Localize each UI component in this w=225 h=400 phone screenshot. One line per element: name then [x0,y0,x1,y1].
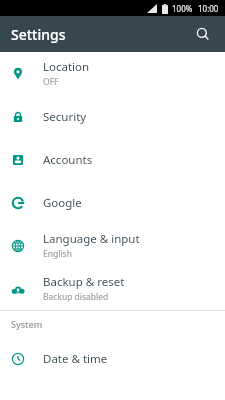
staticText: 100% [172,3,193,14]
staticText: English [43,248,72,260]
staticText: 10:00 [198,3,219,14]
staticText: OFF [43,76,59,88]
staticText: Date & time [43,351,108,367]
staticText: Settings [11,25,66,44]
staticText: Backup disabled [43,291,109,303]
button[interactable]: Accounts [0,138,225,181]
button[interactable]: Date & time [0,337,225,380]
staticText: Location [43,59,90,75]
staticText: Google [43,195,82,211]
button[interactable]: Location [0,52,225,95]
staticText: Accounts [43,152,93,168]
button[interactable]: Security [0,95,225,138]
staticText: Security [43,109,87,125]
staticText: System [11,318,43,330]
button[interactable]: Language & input [0,224,225,267]
button[interactable]: Search [189,20,217,48]
button[interactable]: Google [0,181,225,224]
staticText: Language & input [43,231,140,247]
button[interactable]: Backup & reset [0,267,225,310]
staticText: Backup & reset [43,274,125,290]
